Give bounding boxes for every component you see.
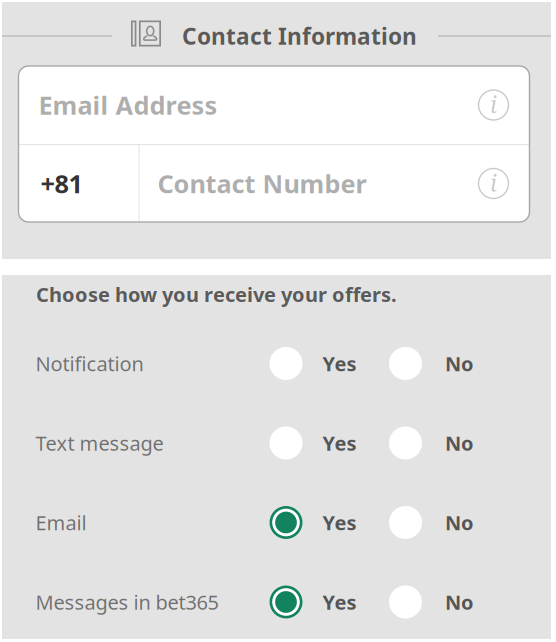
staticText: i — [490, 168, 497, 198]
staticText: No — [445, 509, 474, 536]
staticText: No — [445, 350, 474, 377]
staticText: i — [490, 89, 497, 120]
button[interactable]: No — [389, 324, 481, 403]
staticText: Email Address — [38, 88, 217, 122]
staticText: Yes — [322, 509, 356, 536]
button[interactable]: Yes — [269, 562, 389, 642]
button[interactable]: Yes — [269, 483, 389, 562]
staticText: Notification — [35, 350, 143, 377]
staticText: Yes — [322, 429, 356, 457]
staticText: Email — [35, 509, 86, 536]
button[interactable]: More information about Contact Number — [478, 168, 529, 198]
staticText: Contact Information — [182, 21, 417, 51]
staticText: No — [445, 429, 474, 457]
button[interactable]: More information about Email Address — [478, 90, 529, 120]
staticText: +81 — [40, 166, 82, 201]
staticText: No — [445, 588, 474, 616]
button[interactable]: No — [389, 403, 481, 483]
button[interactable]: No — [389, 483, 481, 562]
button[interactable]: Yes — [269, 324, 389, 403]
staticText: Choose how you receive your offers. — [36, 280, 397, 308]
button[interactable]: No — [389, 562, 481, 642]
staticText: Messages in bet365 — [35, 588, 218, 616]
staticText: Contact Number — [157, 166, 366, 201]
staticText: Yes — [322, 588, 356, 616]
button[interactable]: Yes — [269, 403, 389, 483]
staticText: Text message — [35, 429, 163, 457]
staticText: Yes — [322, 350, 356, 377]
